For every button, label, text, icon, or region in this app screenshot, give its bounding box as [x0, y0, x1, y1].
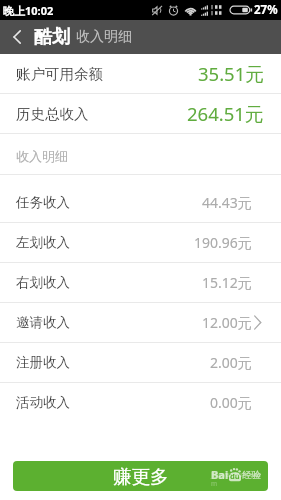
staticText: 注册收入 — [16, 354, 70, 371]
staticText: 历史总收入 — [16, 105, 89, 123]
staticText: 0.00元 — [210, 393, 252, 412]
button[interactable]: 赚更多 — [13, 461, 268, 491]
staticText: 15.12元 — [202, 273, 252, 292]
button[interactable]: 右划收入 — [0, 263, 281, 302]
button[interactable]: 活动收入 — [0, 383, 281, 422]
staticText: 收入明细 — [76, 28, 132, 46]
button[interactable]: 左划收入 — [0, 223, 281, 262]
staticText: du — [230, 471, 240, 481]
staticText: Bai — [211, 467, 229, 482]
button[interactable]: 历史总收入 — [0, 94, 281, 133]
staticText: 任务收入 — [16, 194, 70, 211]
staticText: 活动收入 — [16, 394, 70, 411]
staticText: 邀请收入 — [16, 314, 70, 331]
staticText: 账户可用余额 — [16, 65, 103, 83]
staticText: 44.43元 — [202, 193, 252, 212]
staticText: 264.51元 — [187, 101, 264, 126]
button[interactable]: 任务收入 — [0, 183, 281, 222]
staticText: 右划收入 — [16, 274, 70, 291]
button[interactable]: 邀请收入 — [0, 303, 281, 342]
staticText: 酷划 — [34, 26, 70, 49]
staticText: 2.00元 — [210, 353, 252, 372]
button[interactable]: 账户可用余额 — [0, 54, 281, 93]
staticText: 经验 — [242, 469, 261, 481]
staticText: 晚上10:02 — [3, 3, 54, 18]
staticText: 收入明细 — [16, 148, 68, 164]
button[interactable]: Back — [0, 20, 34, 54]
button[interactable]: 注册收入 — [0, 343, 281, 382]
staticText: 赚更多 — [113, 465, 169, 488]
staticText: 35.51元 — [198, 61, 264, 86]
staticText: 12.00元 — [202, 313, 252, 332]
staticText: 左划收入 — [16, 234, 70, 251]
staticText: 27% — [254, 2, 278, 18]
staticText: 190.96元 — [194, 233, 252, 252]
staticText: jingyan.baidu.com — [211, 470, 267, 488]
